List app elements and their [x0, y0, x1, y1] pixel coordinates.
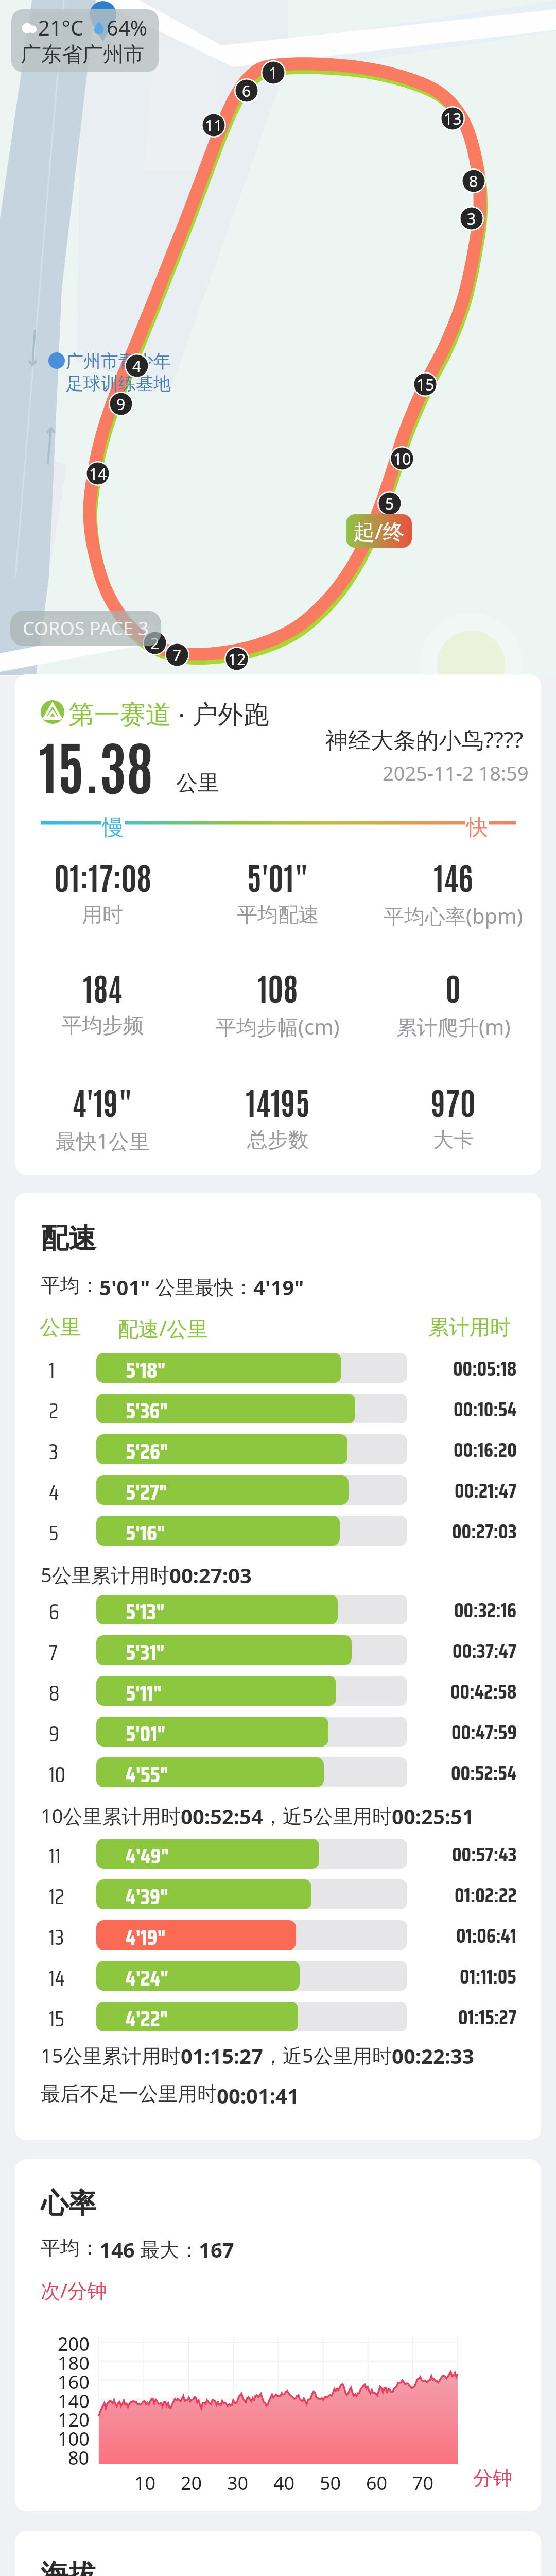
staticText: 用时 [82, 902, 123, 927]
staticText: 平均步幅(cm) [216, 1012, 340, 1041]
staticText: 00:27:03 [169, 1561, 252, 1589]
staticText: 4'19" [253, 1273, 304, 1301]
staticText: 海拔 [41, 2557, 96, 2576]
staticText: 4'22" [126, 2002, 168, 2031]
staticText: 公里最快： [150, 1273, 253, 1300]
staticText: 160 [58, 2369, 90, 2395]
staticText: 累计用时 [428, 1314, 511, 1340]
staticText: 970 [431, 1081, 476, 1122]
staticText: 80 [68, 2445, 90, 2470]
staticText: 5'01" [247, 856, 309, 896]
staticText: 10 [393, 448, 411, 469]
staticText: 快 [466, 814, 488, 841]
staticText: 14 [89, 463, 107, 484]
staticText: 平均： [41, 1273, 99, 1298]
staticText: 平均步频 [61, 1012, 144, 1038]
staticText: ，近5公里用时 [263, 1802, 392, 1829]
staticText: 广东省广州市 [21, 41, 144, 67]
staticText: 次/分钟 [41, 2277, 107, 2303]
staticText: 00:05:18 [453, 1353, 517, 1383]
staticText: 慢 [102, 814, 124, 841]
staticText: 50 [320, 2470, 341, 2496]
staticText: 00:25:51 [392, 1802, 474, 1830]
staticText: 00:22:33 [392, 2042, 474, 2070]
staticText: 00:52:54 [451, 1757, 517, 1787]
staticText: 21°C [38, 13, 84, 41]
staticText: 4'24" [126, 1961, 169, 1991]
staticText: COROS PACE 3 [23, 616, 149, 641]
staticText: 70 [412, 2470, 434, 2496]
staticText: 5'36" [126, 1394, 168, 1423]
staticText: 5'01" [99, 1273, 150, 1301]
staticText: 5'31" [126, 1635, 165, 1665]
other: Weather [21, 13, 147, 67]
staticText: 30 [227, 2470, 249, 2496]
staticText: 4'55" [126, 1757, 168, 1787]
staticText: 00:32:16 [454, 1595, 517, 1624]
staticText: 6 [49, 1595, 59, 1624]
staticText: 13 [49, 1920, 64, 1950]
staticText: 5 [49, 1516, 59, 1546]
staticText: 5'11" [126, 1676, 162, 1706]
staticText: 00:16:20 [454, 1434, 517, 1464]
staticText: 01:06:41 [456, 1920, 517, 1950]
staticText: 01:02:22 [455, 1879, 517, 1909]
staticText: 神经大条的小鸟???? [325, 724, 524, 755]
staticText: 120 [58, 2407, 90, 2432]
staticText: 分钟 [473, 2466, 512, 2490]
staticText: 184 [83, 967, 123, 1007]
staticText: 14 [49, 1961, 65, 1991]
staticText: 200 [58, 2331, 90, 2357]
staticText: 大卡 [433, 1127, 474, 1153]
staticText: 15 [49, 2002, 64, 2031]
staticText: 心率 [41, 2186, 96, 2221]
staticText: 180 [58, 2350, 90, 2376]
staticText: 14195 [246, 1081, 310, 1122]
staticText: 12 [49, 1879, 64, 1909]
staticText: 01:11:05 [460, 1961, 517, 1991]
staticText: 4'39" [126, 1879, 169, 1909]
staticText: 00:52:54 [181, 1802, 263, 1830]
staticText: 7 [172, 645, 182, 666]
staticText: 20 [181, 2470, 202, 2496]
staticText: 5 [385, 493, 394, 514]
staticText: 5'13" [126, 1595, 165, 1624]
staticText: 平均： [41, 2235, 99, 2260]
staticText: 最快1公里 [56, 1127, 150, 1155]
staticText: 4 [132, 355, 142, 377]
staticText: · [171, 697, 192, 732]
staticText: 平均心率(bpm) [384, 902, 523, 930]
staticText: 2 [150, 633, 160, 654]
staticText: 00:27:03 [452, 1516, 517, 1546]
staticText: 15公里累计用时 [41, 2042, 181, 2069]
staticText: 108 [257, 967, 298, 1007]
staticText: 4'19" [126, 1920, 166, 1950]
staticText: 00:57:43 [452, 1839, 517, 1869]
staticText: 100 [58, 2426, 90, 2451]
staticText: 11 [205, 115, 223, 136]
staticText: 01:15:27 [458, 2002, 517, 2031]
staticText: 167 [199, 2235, 234, 2263]
staticText: 12 [228, 649, 246, 670]
staticText: 3 [49, 1434, 58, 1464]
staticText: 00:37:47 [453, 1635, 517, 1665]
staticText: 15.38 [39, 727, 153, 802]
staticText: 4'19" [72, 1081, 133, 1122]
staticText: 1 [269, 62, 278, 83]
staticText: 00:01:41 [217, 2081, 299, 2109]
staticText: 9 [49, 1717, 59, 1747]
staticText: 1 [49, 1353, 55, 1383]
staticText: 起/终 [353, 516, 405, 546]
staticText: 8 [49, 1676, 60, 1706]
staticText: 146 [433, 856, 473, 896]
staticText: 01:15:27 [181, 2042, 263, 2070]
staticText: 140 [58, 2388, 90, 2414]
staticText: 2 [49, 1394, 59, 1423]
staticText: 5'16" [126, 1516, 166, 1546]
staticText: 足球训练基地 [66, 372, 171, 395]
staticText: 11 [49, 1839, 61, 1869]
staticText: 5'27" [126, 1475, 167, 1505]
staticText: 5'01" [126, 1717, 166, 1747]
staticText: 配速/公里 [118, 1314, 208, 1343]
staticText: 平均配速 [237, 902, 319, 927]
